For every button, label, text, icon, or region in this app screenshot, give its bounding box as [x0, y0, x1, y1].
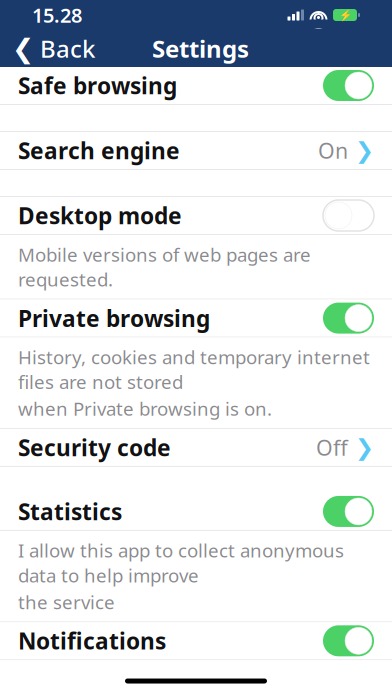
button[interactable]: Search engine	[0, 132, 392, 169]
staticText: ❯	[355, 435, 374, 460]
staticText: ❮	[12, 33, 34, 64]
staticText: History, cookies and temporary internet …	[18, 345, 370, 394]
staticText: 15.28	[32, 2, 82, 28]
staticText: Security code	[18, 432, 171, 462]
staticText: Back	[40, 33, 95, 64]
button[interactable]: Safe browsing	[0, 67, 392, 104]
staticText: ⚡	[338, 9, 351, 21]
button[interactable]: Statistics	[0, 493, 392, 530]
staticText: Off	[316, 433, 348, 462]
staticText: Statistics	[18, 496, 122, 526]
staticText: when Private browsing is on.	[18, 396, 272, 421]
staticText: Safe browsing	[18, 70, 177, 100]
staticText: Search engine	[18, 135, 180, 165]
button[interactable]: ❮	[0, 30, 105, 67]
staticText: the service	[18, 589, 115, 614]
staticText: Desktop mode	[18, 200, 182, 230]
button[interactable]: Notifications	[0, 622, 392, 659]
button[interactable]: Security code	[0, 429, 392, 466]
staticText: ❯	[355, 138, 374, 163]
button[interactable]: Desktop mode	[0, 197, 392, 234]
staticText: Notifications	[18, 626, 166, 656]
staticText: Show notifications of new product featur…	[18, 667, 317, 696]
staticText: Private browsing	[18, 303, 210, 333]
button[interactable]: Private browsing	[0, 300, 392, 337]
staticText: I allow this app to collect anonymous da…	[18, 538, 344, 588]
staticText: Settings	[152, 33, 249, 64]
staticText: On	[318, 136, 348, 165]
staticText: Mobile versions of web pages are request…	[18, 242, 311, 292]
